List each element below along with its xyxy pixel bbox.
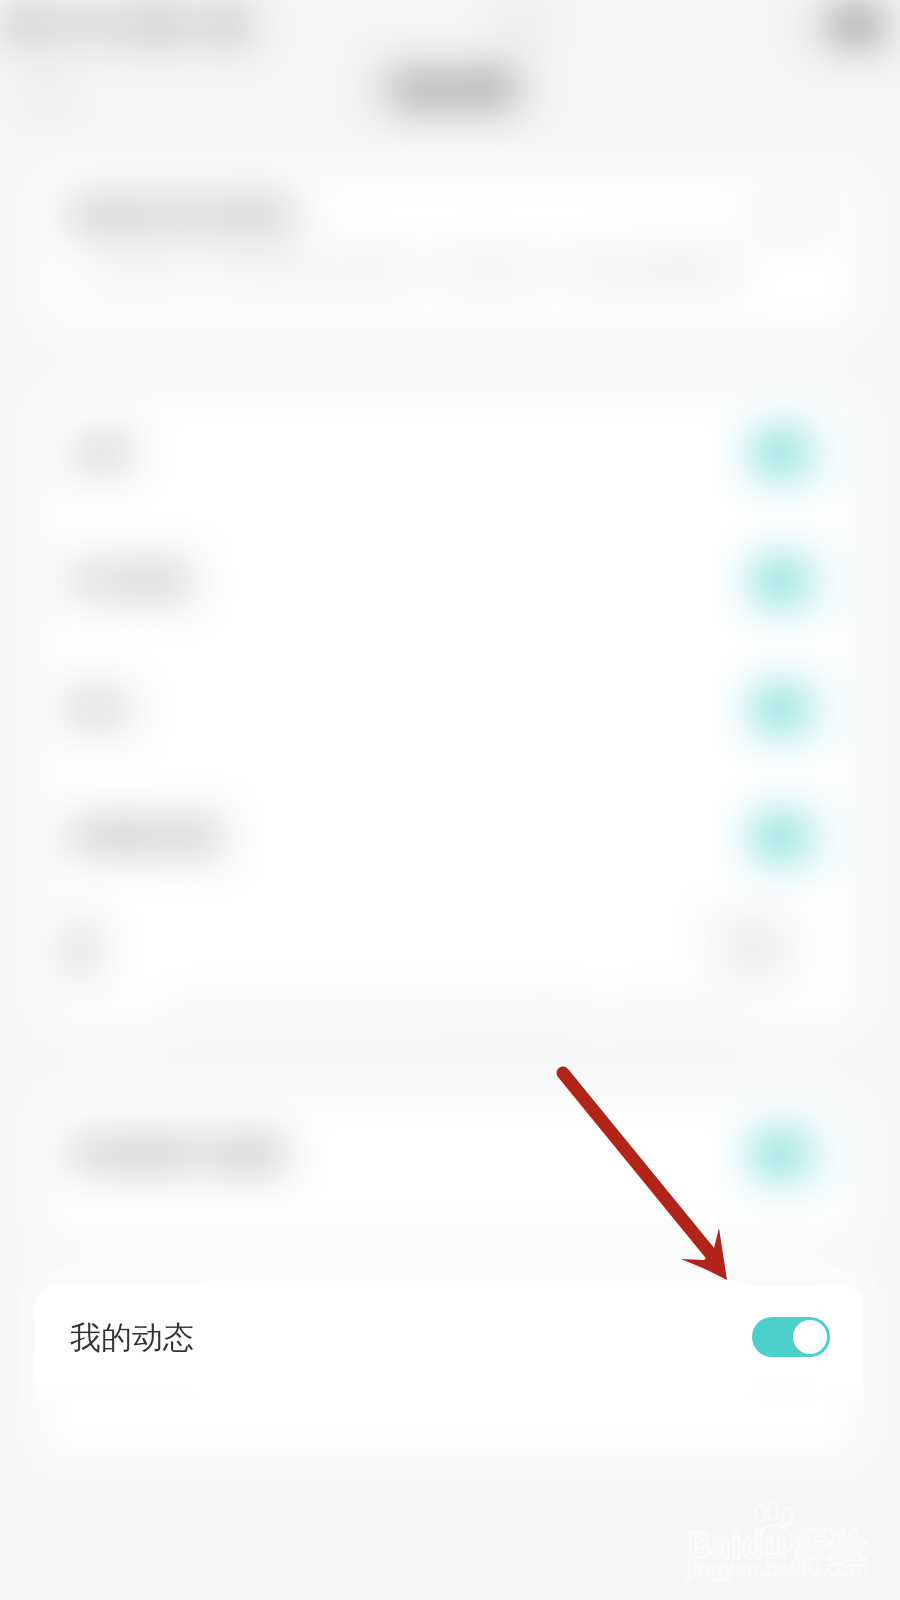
button[interactable]: 点赞 [35,389,865,516]
staticText: 评论回复 [68,561,192,600]
staticText: 我的动态 [70,1318,194,1357]
button[interactable]: 私信 [35,645,865,772]
staticText: 点赞 [68,433,130,472]
button[interactable]: 我的动态 [35,1286,863,1414]
button[interactable]: 系统通知与提醒 [35,1090,865,1217]
staticText: 我的动态 [68,1318,192,1357]
button[interactable]: 免 [35,901,865,999]
staticText: 新增粉丝数 [68,817,223,856]
button[interactable]: 我的动态 [35,1274,865,1401]
button[interactable]: Toggle [754,1318,832,1358]
button[interactable]: Toggle [754,561,832,601]
button[interactable]: Toggle [754,689,832,729]
button[interactable]: Toggle [754,817,832,857]
staticText: 系统通知与提醒 [68,1134,285,1173]
button[interactable]: 新增粉丝数 [35,773,865,900]
button[interactable]: Toggle [754,433,832,473]
staticText: 接收新消息通知 [68,194,299,236]
staticText: 消息设置 [384,69,516,111]
button[interactable]: 接收新消息通知 [35,168,865,335]
button[interactable]: 评论回复 [35,517,865,644]
staticText: 55 [806,12,828,38]
button[interactable]: Toggle [754,1134,832,1174]
